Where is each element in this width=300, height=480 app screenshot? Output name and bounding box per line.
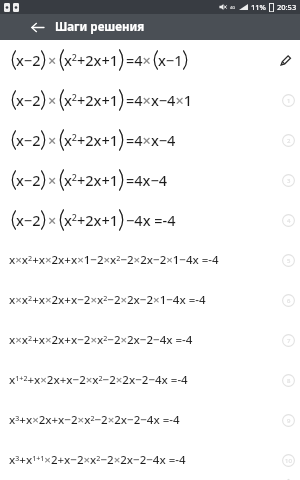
staticText: 20:53 [277, 2, 297, 12]
staticText: 10 [285, 457, 292, 465]
button[interactable]: Step 1 [282, 94, 295, 107]
staticText: x−2 [16, 90, 41, 110]
staticText: x1+2+x×2x+x−2×x2−2×2x−2−4x =-4 [9, 372, 188, 388]
button[interactable]: x×x2+x×2x+x−2×x2−2×2x−2−4x =-4 [0, 320, 300, 360]
staticText: x−1 [158, 50, 183, 70]
button[interactable]: Step 9 [282, 414, 295, 427]
staticText: x−2 [16, 210, 41, 230]
staticText: x−2 [16, 130, 41, 150]
button[interactable]: Step 8 [282, 374, 295, 387]
button[interactable]: x×x2+x×2x+x−2×x2−2×2x−2×1−4x =-4 [0, 280, 300, 320]
staticText: 8 [287, 377, 291, 385]
staticText: x3+x1+1×2+x−2×x2−2×2x−2−4x =-4 [9, 452, 186, 468]
button[interactable]: x−2 [0, 120, 300, 160]
staticText: x2+2x+1 [64, 210, 119, 230]
staticText: × [48, 130, 57, 150]
button[interactable]: x1+2+x×2x+x−2×x2−2×2x−2−4x =-4 [0, 360, 300, 400]
button[interactable]: x−2 [0, 80, 300, 120]
staticText: x−2 [16, 170, 41, 190]
staticText: 5 [287, 257, 291, 265]
staticText: x2+2x+1 [64, 50, 119, 70]
button[interactable]: x3+x1+1×2+x−2×x2−2×2x−2−4x =-4 [0, 440, 300, 480]
staticText: × [48, 170, 57, 190]
staticText: x2+2x+1 [64, 170, 119, 190]
staticText: =4×x−4×1 [126, 90, 192, 110]
staticText: × [48, 50, 57, 70]
staticText: 3 [287, 177, 291, 185]
staticText: =4× [126, 50, 151, 70]
staticText: 11% [251, 2, 266, 12]
button[interactable]: x3+x×2x+x−2×x2−2×2x−2−4x =-4 [0, 400, 300, 440]
staticText: × [48, 90, 57, 110]
button[interactable]: x×x2+x×2x+x×1−2×x2−2×2x−2×1−4x =-4 [0, 240, 300, 280]
staticText: −4x =-4 [126, 210, 176, 230]
staticText: x×x2+x×2x+x−2×x2−2×2x−2×1−4x =-4 [9, 292, 206, 308]
staticText: 7 [287, 337, 291, 345]
staticText: x2+2x+1 [64, 90, 119, 110]
staticText: =4x−4 [126, 170, 168, 190]
button[interactable]: x−2 [0, 40, 300, 80]
staticText: =4×x−4 [126, 130, 176, 150]
staticText: 4 [287, 217, 291, 225]
button[interactable]: Edit [275, 50, 295, 70]
button[interactable]: Step 4 [282, 214, 295, 227]
button[interactable]: Step 3 [282, 174, 295, 187]
button[interactable]: x−2 [0, 200, 300, 240]
button[interactable]: x−2 [0, 160, 300, 200]
button[interactable]: Back [26, 16, 48, 38]
button[interactable]: Step 2 [282, 134, 295, 147]
staticText: x3+x×2x+x−2×x2−2×2x−2−4x =-4 [9, 412, 180, 428]
staticText: Шаги решения [55, 19, 145, 35]
staticText: 1 [287, 97, 291, 105]
button[interactable]: Step 5 [282, 254, 295, 267]
button[interactable]: Step 10 [282, 454, 295, 467]
staticText: 4G [230, 5, 236, 10]
staticText: 6 [287, 297, 291, 305]
button[interactable]: Step 7 [282, 334, 295, 347]
staticText: x×x2+x×2x+x−2×x2−2×2x−2−4x =-4 [9, 332, 193, 348]
staticText: 9 [287, 417, 291, 425]
button[interactable]: Step 6 [282, 294, 295, 307]
staticText: x×x2+x×2x+x×1−2×x2−2×2x−2×1−4x =-4 [9, 252, 219, 268]
staticText: x2+2x+1 [64, 130, 119, 150]
staticText: x−2 [16, 50, 41, 70]
staticText: × [48, 210, 57, 230]
staticText: 2 [287, 137, 291, 145]
